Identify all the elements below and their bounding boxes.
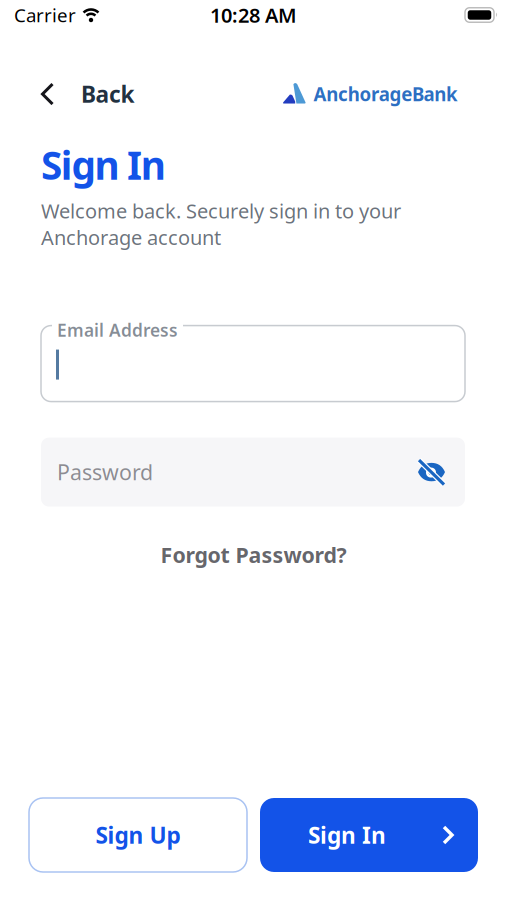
staticText: Sign Up (95, 820, 180, 850)
staticText: Carrier (14, 3, 76, 27)
staticText: Back (81, 79, 134, 109)
button[interactable]: Sign In (260, 798, 478, 872)
button[interactable] (417, 461, 446, 483)
staticText: Sign In (41, 139, 166, 190)
button[interactable]: Back (41, 79, 134, 109)
staticText: AnchorageBank (314, 82, 458, 106)
staticText: Password (57, 458, 153, 486)
button[interactable]: Sign Up (29, 798, 247, 872)
staticText: Welcome back. Securely sign in to your A… (41, 197, 401, 250)
staticText: 10:28 AM (210, 2, 297, 28)
button[interactable]: Forgot Password? (160, 541, 346, 569)
staticText: Sign In (308, 820, 386, 850)
staticText: Forgot Password? (160, 541, 346, 569)
staticText: Email Address (57, 319, 178, 342)
